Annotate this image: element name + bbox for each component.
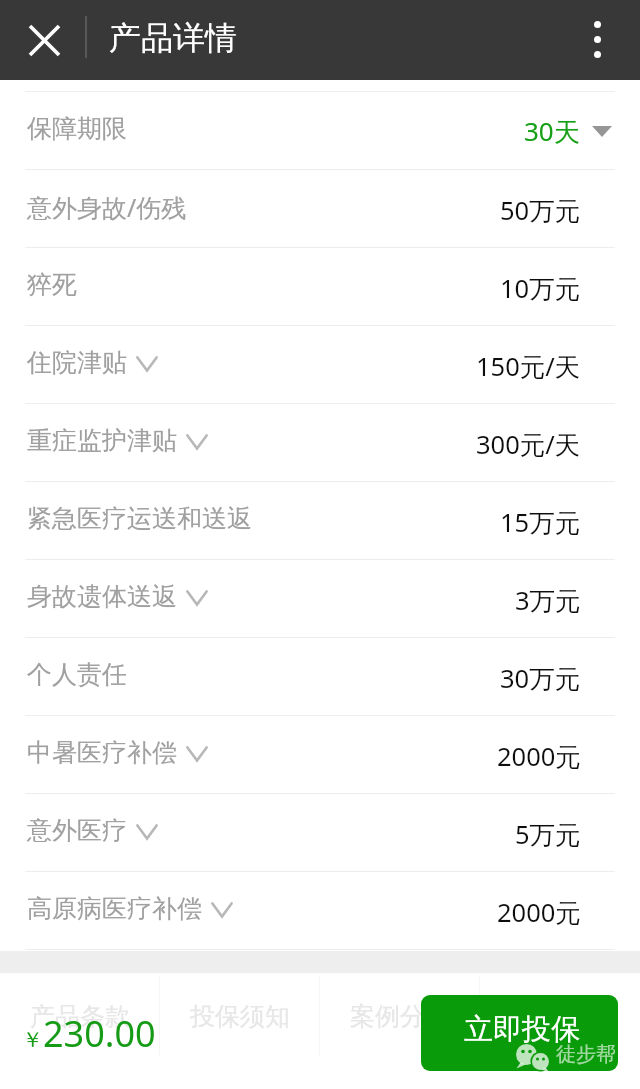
button[interactable]: 紧急医疗运送和送返 xyxy=(0,482,640,559)
staticText: 保障期限 xyxy=(27,113,127,144)
staticText: 案例分享 xyxy=(350,1001,450,1032)
staticText: 身故遗体送返 xyxy=(27,581,177,612)
button[interactable]: 身故遗体送返 xyxy=(0,560,640,637)
staticText: 产品条款 xyxy=(30,1001,130,1032)
button[interactable]: 保障期限 xyxy=(0,92,640,169)
staticText: 30万元 xyxy=(500,661,581,696)
button[interactable]: 意外医疗 xyxy=(0,794,640,871)
button[interactable]: More options xyxy=(567,9,627,69)
staticText: 300元/天 xyxy=(476,427,581,462)
button[interactable]: 案例分享 xyxy=(320,977,480,1057)
staticText: 产品详情 xyxy=(109,18,237,58)
staticText: 10万元 xyxy=(500,271,581,306)
staticText: 意外身故/伤残 xyxy=(27,190,187,224)
staticText: 理赔指引 xyxy=(510,1001,610,1032)
staticText: 2000元 xyxy=(497,895,581,930)
staticText: 30天 xyxy=(524,113,580,149)
staticText: 3万元 xyxy=(515,583,581,618)
staticText: 投保须知 xyxy=(190,1001,290,1032)
staticText: 猝死 xyxy=(27,269,77,300)
staticText: 高原病医疗补偿 xyxy=(27,893,202,924)
button[interactable]: 理赔指引 xyxy=(480,977,640,1057)
button[interactable]: 意外身故/伤残 xyxy=(0,170,640,247)
staticText: 徒步帮 xyxy=(556,1042,616,1067)
button[interactable]: 重症监护津贴 xyxy=(0,404,640,481)
button[interactable]: 猝死 xyxy=(0,248,640,325)
staticText: 2000元 xyxy=(497,739,581,774)
button[interactable]: 高原病医疗补偿 xyxy=(0,872,640,949)
staticText: 意外医疗 xyxy=(27,815,127,846)
button[interactable]: 投保须知 xyxy=(160,977,320,1057)
staticText: 150元/天 xyxy=(476,349,581,384)
staticText: 紧急医疗运送和送返 xyxy=(27,503,252,534)
staticText: 15万元 xyxy=(500,505,581,540)
staticText: ￥ xyxy=(22,1027,43,1053)
staticText: 5万元 xyxy=(515,817,581,852)
staticText: 50万元 xyxy=(500,193,581,228)
staticText: 重症监护津贴 xyxy=(27,425,177,456)
button[interactable]: 中暑医疗补偿 xyxy=(0,716,640,793)
staticText: 立即投保 xyxy=(464,1011,580,1048)
staticText: 中暑医疗补偿 xyxy=(27,737,177,768)
staticText: 住院津贴 xyxy=(27,347,127,378)
staticText: 个人责任 xyxy=(27,659,127,690)
button[interactable]: 产品条款 xyxy=(0,977,160,1057)
button[interactable]: 立即投保 xyxy=(421,995,618,1071)
staticText: 230.00 xyxy=(43,1009,156,1058)
button[interactable]: 个人责任 xyxy=(0,638,640,715)
button[interactable]: 住院津贴 xyxy=(0,326,640,403)
button[interactable]: Close xyxy=(13,9,73,69)
other: WeChat xyxy=(516,1045,554,1071)
